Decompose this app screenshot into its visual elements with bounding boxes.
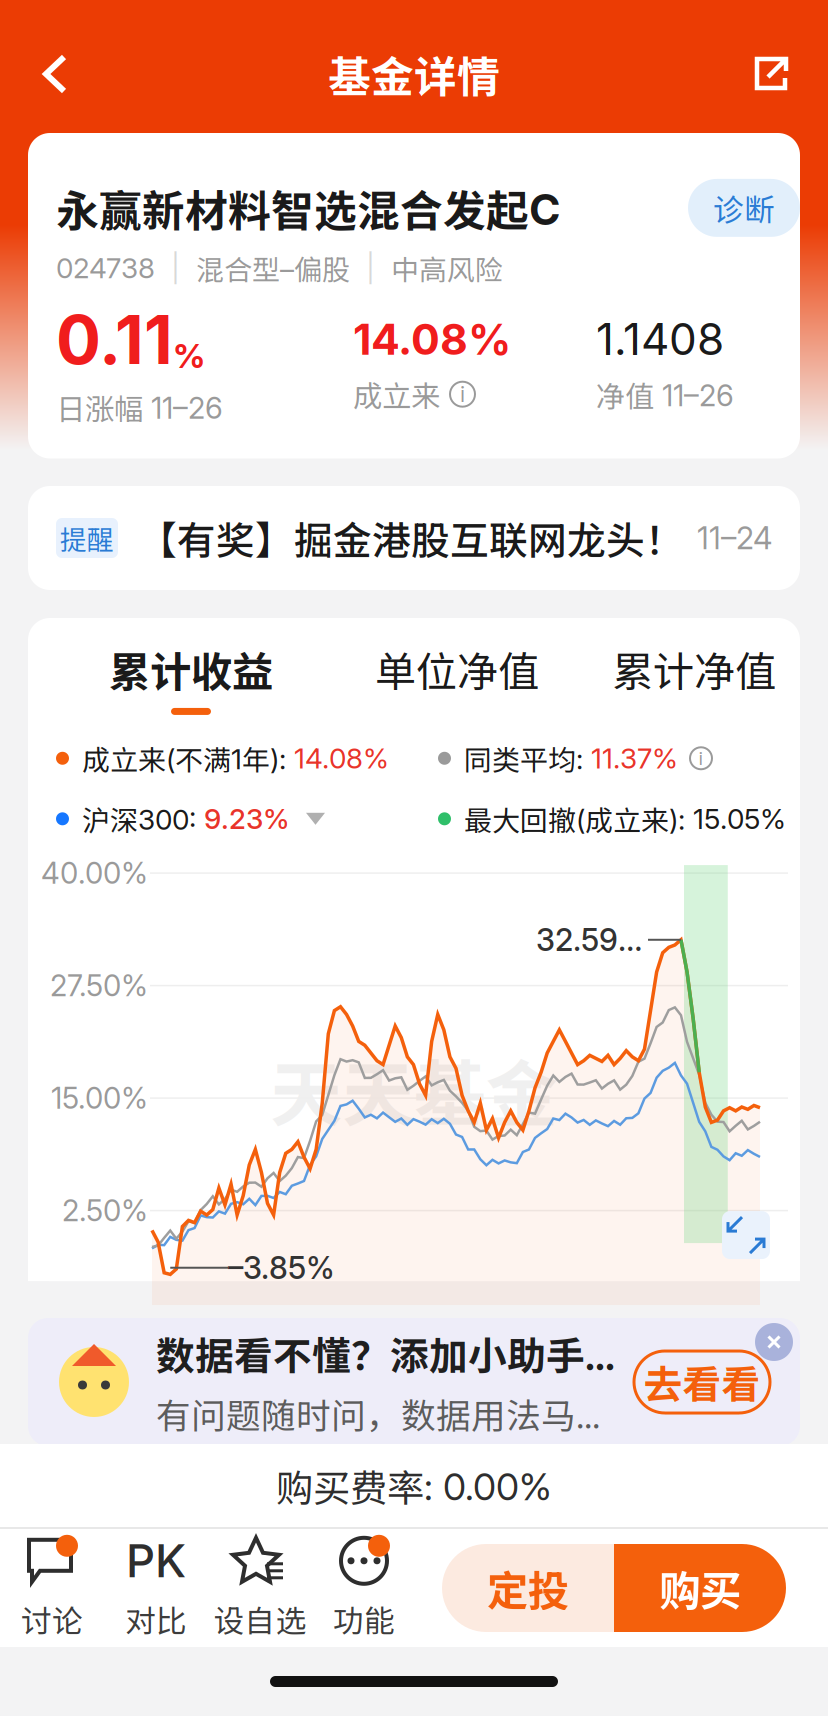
staticText: –3.85%	[228, 1249, 335, 1286]
button[interactable]: Back	[18, 28, 92, 120]
button[interactable]: 累计收益	[56, 648, 326, 706]
button[interactable]: 功能	[312, 1529, 416, 1647]
staticText: 诊断	[713, 186, 775, 230]
staticText: 9.23%	[204, 802, 290, 836]
staticText: 功能	[333, 1597, 395, 1641]
staticText: 日涨幅 11–26	[56, 386, 223, 428]
button[interactable]: 去看看	[634, 1351, 770, 1413]
staticText: i	[698, 747, 703, 770]
staticText: 定投	[487, 1558, 569, 1618]
staticText: 沪深300:	[82, 798, 204, 839]
staticText: 14.08%	[353, 313, 511, 365]
staticText: 基金详情	[328, 43, 500, 105]
button[interactable]: Expand chart	[722, 1211, 770, 1259]
staticText: 【有奖】掘金港股互联网龙头！	[138, 510, 684, 566]
staticText: 累计净值	[612, 639, 776, 699]
staticText: 购买费率: 0.00%	[276, 1458, 552, 1513]
staticText: 设自选	[213, 1597, 306, 1641]
button[interactable]: 累计净值	[588, 648, 800, 706]
staticText: 累计收益	[109, 639, 273, 699]
staticText: 单位净值	[375, 639, 539, 699]
staticText: 讨论	[21, 1597, 83, 1641]
staticText: 成立来	[353, 373, 440, 415]
staticText: 对比	[125, 1597, 187, 1641]
staticText: 1.1408	[596, 312, 724, 365]
staticText: 14.08%	[294, 741, 389, 775]
button[interactable]: Close banner	[752, 1320, 796, 1364]
button[interactable]: 单位净值	[326, 648, 588, 706]
staticText: 最大回撤(成立来):	[464, 798, 693, 839]
staticText: 购买	[659, 1558, 741, 1618]
staticText: 去看看	[643, 1354, 760, 1410]
button[interactable]: PK	[104, 1529, 208, 1647]
staticText: 0.11	[56, 299, 173, 380]
staticText: PK	[126, 1533, 186, 1588]
button[interactable]: 提醒	[28, 486, 800, 590]
staticText: 天天基金	[270, 1037, 558, 1141]
staticText: 净值 11–26	[596, 374, 734, 416]
button[interactable]: 设自选	[208, 1529, 312, 1647]
staticText: 同类平均:	[464, 738, 591, 778]
staticText: 27.50%	[50, 968, 148, 1003]
staticText: 15.05%	[693, 802, 786, 836]
staticText: 数据看不懂？添加小助手免费答疑！	[156, 1325, 630, 1381]
staticText: 15.00%	[51, 1080, 148, 1116]
staticText: |	[350, 251, 391, 285]
staticText: 永赢新材料智选混合发起C	[56, 177, 561, 239]
staticText: 40.00%	[41, 855, 148, 891]
button[interactable]: Share	[732, 28, 810, 120]
staticText: 024738	[56, 251, 155, 285]
staticText: 32.59%	[536, 921, 646, 958]
staticText: |	[155, 251, 196, 285]
staticText: 11–24	[697, 519, 772, 556]
staticText: i	[460, 381, 465, 407]
staticText: 成立来(不满1年):	[82, 738, 294, 778]
button[interactable]: 讨论	[0, 1529, 104, 1647]
button[interactable]: 诊断	[688, 179, 800, 237]
staticText: 混合型–偏股	[196, 248, 350, 288]
staticText: %	[173, 336, 205, 376]
button[interactable]: 购买	[614, 1544, 786, 1632]
staticText: 中高风险	[391, 248, 503, 288]
staticText: 11.37%	[591, 741, 678, 775]
staticText: 2.50%	[62, 1193, 148, 1228]
staticText: 有问题随时问，数据用法马上会	[156, 1388, 630, 1439]
button[interactable]: 定投	[442, 1544, 614, 1632]
staticText: 提醒	[60, 519, 114, 557]
